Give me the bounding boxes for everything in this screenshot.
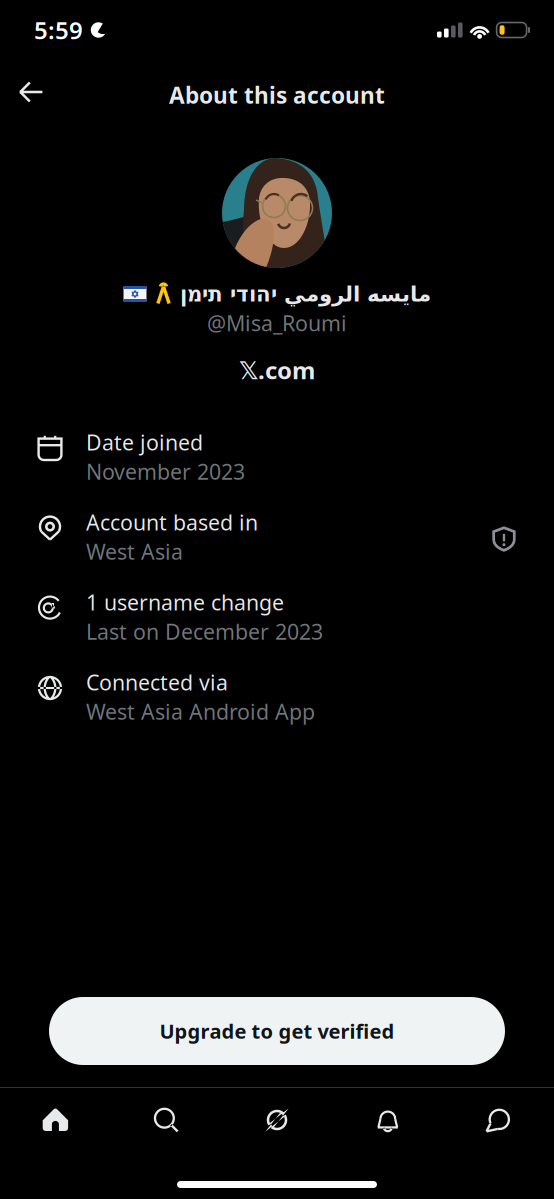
- button[interactable]: Notifications: [332, 1107, 443, 1133]
- staticText: Date joined: [86, 428, 203, 456]
- staticText: Account based in: [86, 508, 258, 536]
- staticText: West Asia: [86, 537, 183, 566]
- staticText: 1 username change: [86, 588, 284, 616]
- staticText: Upgrade to get verified: [159, 1018, 394, 1044]
- staticText: About this account: [169, 80, 385, 110]
- staticText: مايسه الرومي יהודי תימן: [179, 282, 430, 306]
- staticText: Connected via: [86, 668, 228, 696]
- staticText: Last on December 2023: [86, 617, 323, 646]
- staticText: @Misa_Roumi: [207, 309, 347, 337]
- staticText: 5:59: [34, 14, 83, 46]
- button[interactable]: Back: [0, 68, 58, 116]
- staticText: 𝕏.com: [239, 354, 315, 386]
- button[interactable]: Home: [0, 1107, 111, 1133]
- button[interactable]: Messages: [443, 1107, 554, 1133]
- button[interactable]: Upgrade to get verified: [49, 997, 505, 1065]
- staticText: November 2023: [86, 457, 245, 486]
- staticText: West Asia Android App: [86, 697, 315, 726]
- button[interactable]: Grok: [222, 1107, 332, 1133]
- button[interactable]: Search: [111, 1107, 222, 1133]
